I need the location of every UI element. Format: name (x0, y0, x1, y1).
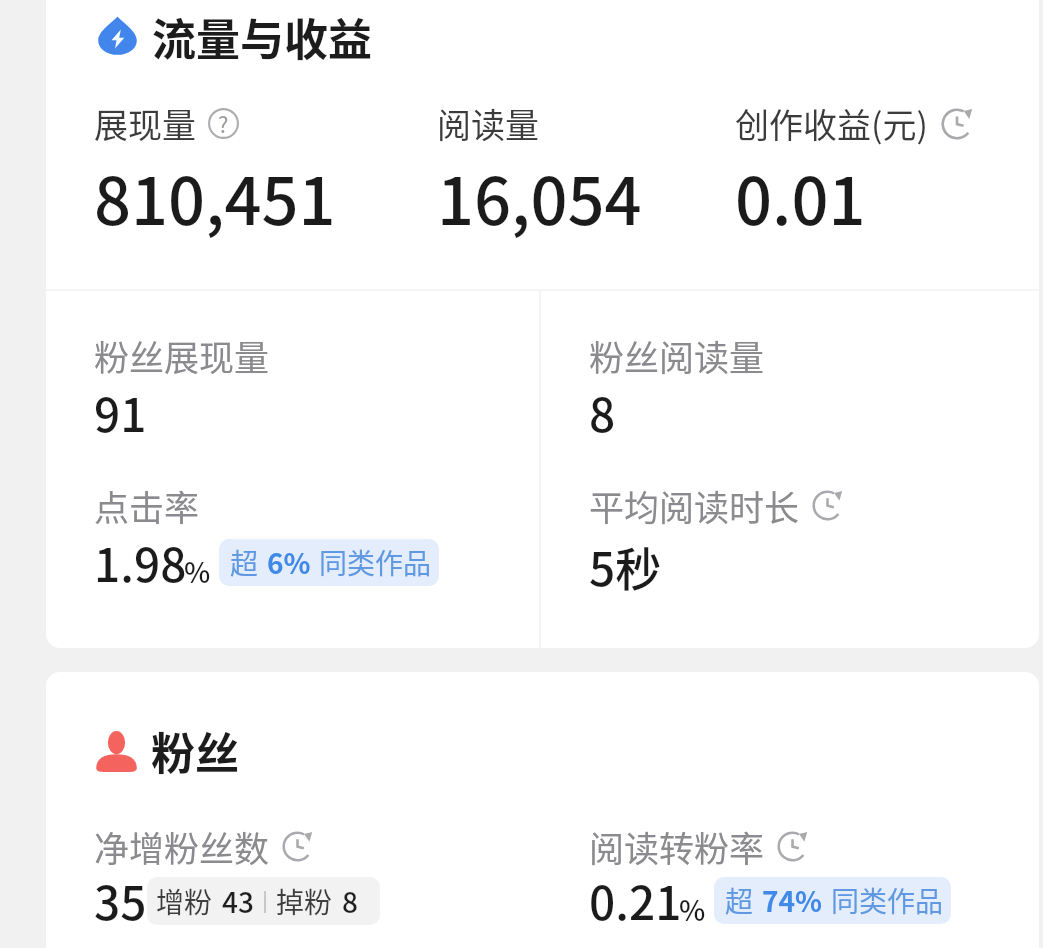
button[interactable]: 流量与收益 (92, 2, 382, 74)
button[interactable]: 粉丝展现量 (84, 318, 514, 436)
staticText: 超 (725, 880, 754, 921)
button[interactable]: 点击率 (84, 468, 514, 586)
staticText: 增粉 (156, 881, 213, 922)
button[interactable]: 净增粉丝数 (84, 809, 514, 927)
staticText: 净增粉丝数 (94, 821, 270, 872)
staticText: 阅读量 (437, 99, 539, 148)
button[interactable]: 超 (219, 539, 439, 586)
staticText: 同类作品 (831, 880, 944, 921)
button[interactable]: 阅读量 (429, 89, 717, 236)
staticText: 74% (762, 880, 823, 921)
button[interactable]: 粉丝阅读量 (579, 318, 1009, 436)
staticText: 1.98 (94, 529, 187, 596)
staticText: 35 (94, 867, 147, 934)
staticText: ? (218, 107, 229, 138)
button[interactable]: 粉丝 (90, 716, 249, 788)
staticText: 粉丝展现量 (94, 330, 270, 381)
staticText: 同类作品 (319, 542, 432, 583)
staticText: 超 (230, 542, 259, 583)
button[interactable]: 数据更新说明 (812, 490, 843, 521)
staticText: 平均阅读时长 (589, 480, 800, 531)
staticText: 810,451 (94, 150, 336, 244)
staticText: 0.01 (735, 150, 866, 244)
staticText: 粉丝阅读量 (589, 330, 765, 381)
staticText: 展现量 (94, 99, 196, 148)
staticText: 流量与收益 (152, 5, 372, 69)
button[interactable]: 数据更新说明 (282, 831, 313, 862)
staticText: 43 (222, 881, 254, 922)
staticText: 点击率 (94, 480, 200, 531)
button[interactable]: 阅读转粉率 (579, 809, 1009, 927)
button[interactable]: 创作收益(元) (727, 89, 1015, 236)
staticText: 8 (589, 379, 616, 446)
button[interactable]: 数据更新说明 (777, 831, 808, 862)
button[interactable]: 增粉 (147, 877, 380, 925)
button[interactable]: 超 (714, 877, 951, 924)
staticText: 91 (94, 379, 147, 446)
staticText: 6% (267, 542, 311, 583)
staticText: % (679, 889, 706, 930)
button[interactable]: 帮助说明 (208, 108, 239, 139)
staticText: 阅读转粉率 (589, 821, 765, 872)
staticText: 创作收益(元) (735, 99, 928, 148)
button[interactable]: 数据更新说明 (941, 108, 973, 140)
staticText: 5秒 (589, 533, 662, 600)
staticText: % (184, 551, 211, 592)
staticText: 掉粉 (276, 881, 333, 922)
staticText: 8 (342, 881, 358, 922)
staticText: 16,054 (437, 150, 642, 244)
staticText: 粉丝 (151, 719, 239, 783)
button[interactable]: 平均阅读时长 (579, 468, 1009, 586)
button[interactable]: 展现量 (86, 89, 374, 236)
staticText: 0.21 (589, 867, 682, 934)
